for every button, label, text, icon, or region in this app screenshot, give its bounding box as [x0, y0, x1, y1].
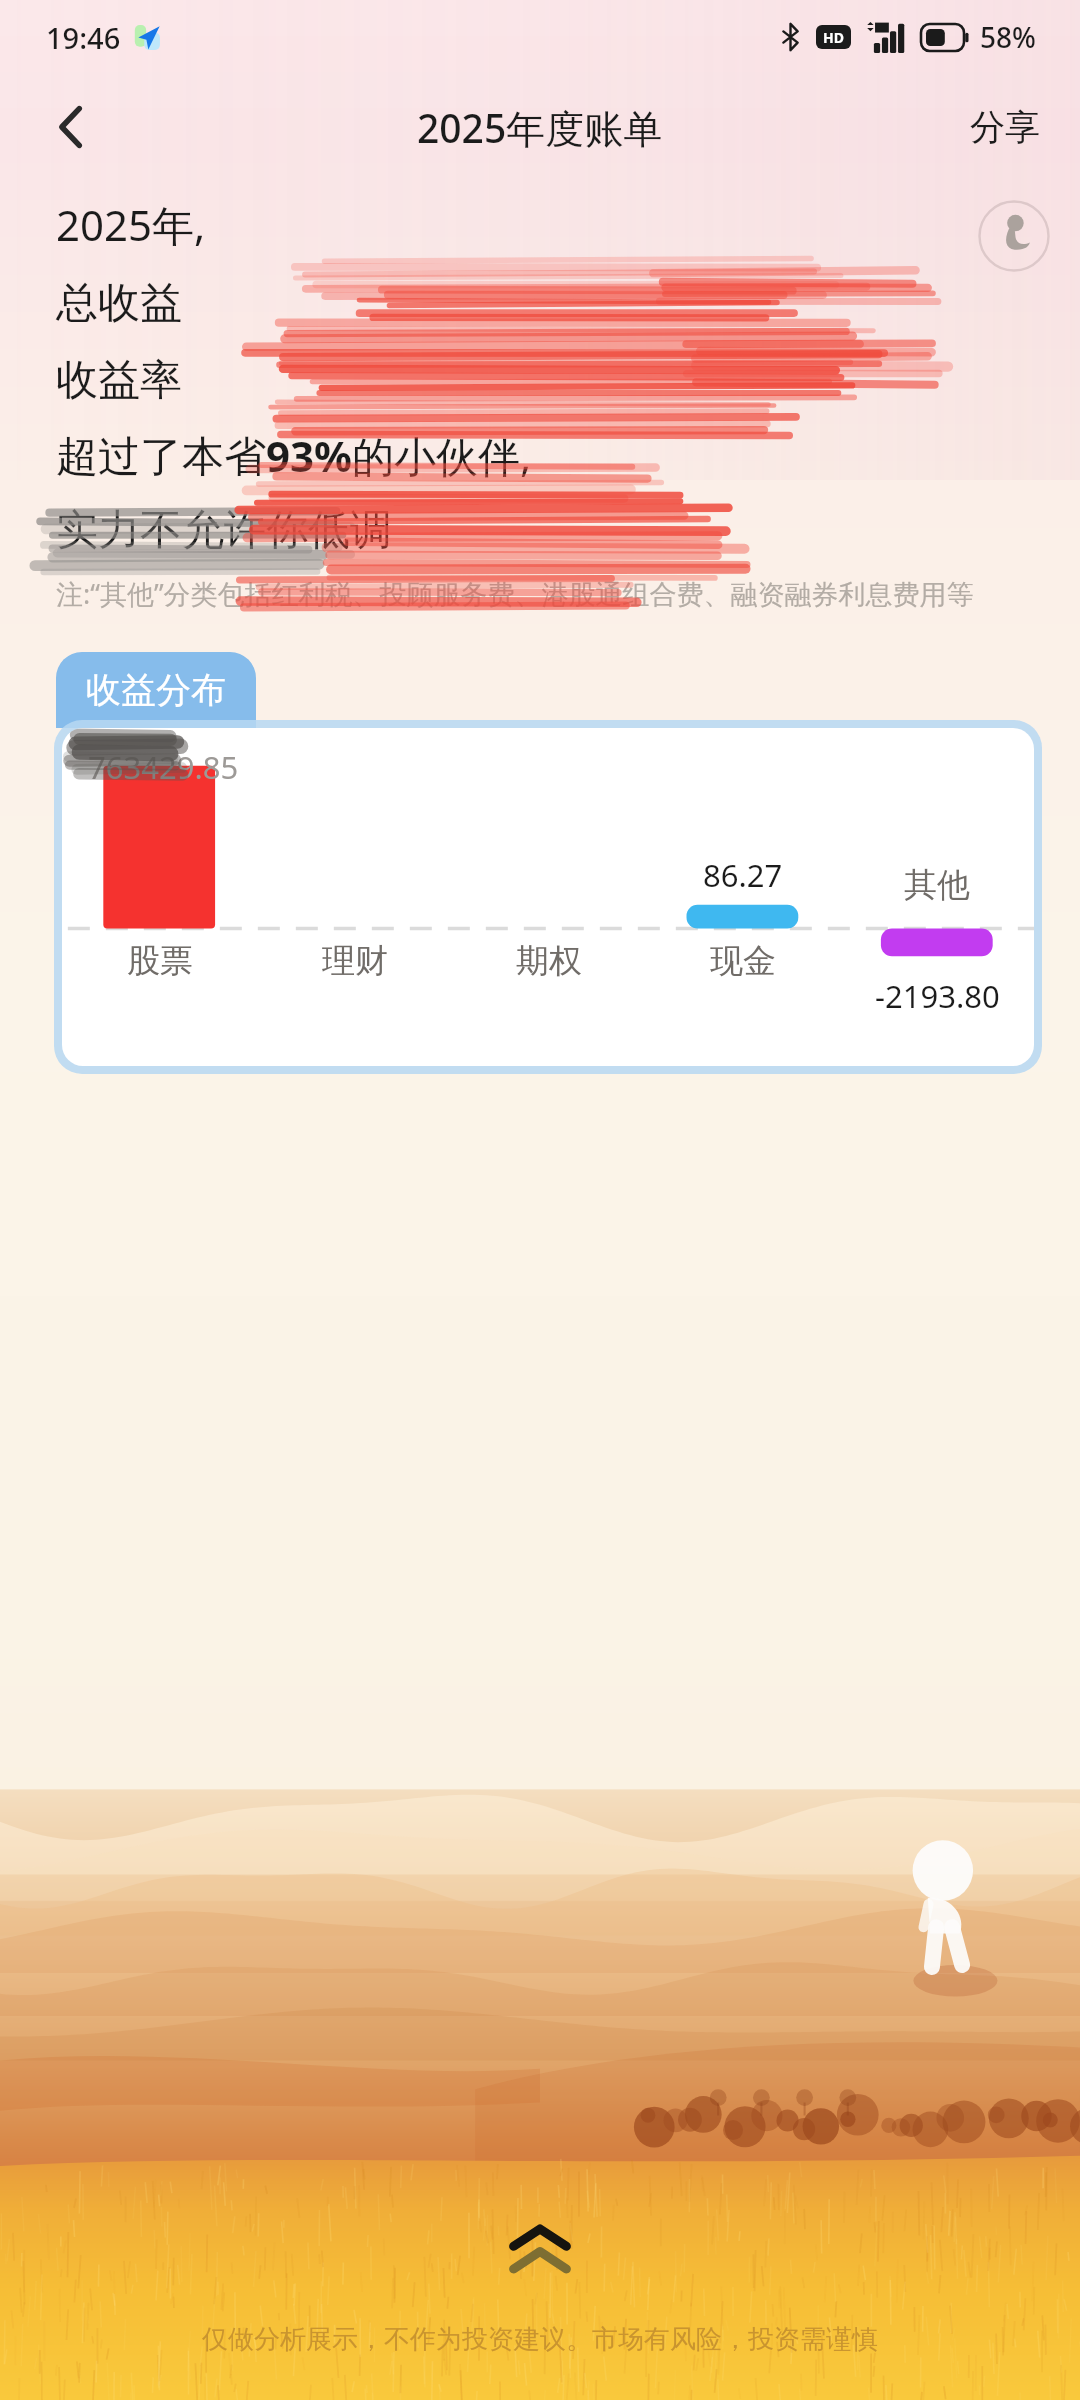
- button[interactable]: Scroll up: [492, 2207, 588, 2303]
- staticText: 93%: [266, 427, 352, 484]
- staticText: 的小伙伴,: [352, 427, 532, 484]
- staticText: 股票: [127, 940, 193, 982]
- staticText: 分享: [970, 105, 1040, 149]
- staticText: 86.27: [703, 854, 783, 896]
- staticText: 收益分布: [86, 668, 226, 712]
- staticText: 总收益: [56, 277, 182, 330]
- staticText: 超过了本省: [56, 431, 266, 484]
- button[interactable]: 收益分布: [56, 652, 256, 728]
- staticText: -2193.80: [875, 975, 1000, 1017]
- staticText: 现金: [710, 940, 776, 982]
- staticText: 其他: [904, 864, 970, 906]
- staticText: 58%: [980, 18, 1036, 56]
- staticText: 仅做分析展示，不作为投资建议。市场有风险，投资需谨慎: [0, 2323, 1080, 2356]
- staticText: 763429.85: [88, 746, 239, 788]
- staticText: 收益率: [56, 354, 182, 407]
- staticText: 实力不允许你低调: [56, 504, 392, 557]
- staticText: 理财: [322, 940, 388, 982]
- staticText: 19:46: [46, 18, 121, 57]
- staticText: 期权: [516, 940, 582, 982]
- staticText: 2025年,: [56, 196, 206, 253]
- staticText: 注:“其他”分类包括红利税、投顾服务费、港股通组合费、融资融券利息费用等: [56, 575, 974, 612]
- button[interactable]: Back: [28, 84, 114, 170]
- button[interactable]: 分享: [960, 93, 1050, 161]
- staticText: HD: [823, 28, 844, 47]
- staticText: 2025年度账单: [417, 101, 663, 154]
